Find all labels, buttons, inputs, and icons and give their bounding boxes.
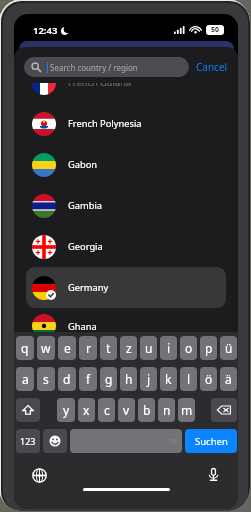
staticText: Cancel bbox=[196, 60, 228, 74]
staticText: n bbox=[163, 402, 171, 418]
button[interactable]: e bbox=[58, 336, 76, 360]
button[interactable]: Search country / region bbox=[24, 57, 189, 77]
staticText: p bbox=[205, 340, 213, 356]
staticText: ü bbox=[225, 340, 233, 356]
button[interactable]: r bbox=[79, 336, 97, 360]
button[interactable]: z bbox=[120, 336, 137, 360]
staticText: Search country / region bbox=[50, 62, 138, 73]
button[interactable]: 123 bbox=[16, 429, 40, 453]
button[interactable]: l bbox=[180, 367, 197, 391]
staticText: h bbox=[125, 371, 133, 387]
button[interactable]: i bbox=[160, 336, 177, 360]
staticText: 50 bbox=[211, 25, 220, 35]
button[interactable]: n bbox=[158, 398, 175, 422]
staticText: x bbox=[83, 402, 90, 418]
staticText: m bbox=[181, 402, 193, 418]
staticText: b bbox=[143, 402, 151, 418]
staticText: e bbox=[64, 340, 71, 356]
staticText: z bbox=[126, 340, 132, 356]
button[interactable]: ä bbox=[220, 367, 237, 391]
button[interactable]: p bbox=[200, 336, 217, 360]
button[interactable]: g bbox=[100, 367, 117, 391]
staticText: ä bbox=[225, 371, 232, 387]
staticText: c bbox=[104, 402, 110, 418]
button[interactable]: Emoji bbox=[43, 429, 67, 453]
staticText: ö bbox=[205, 371, 213, 387]
button[interactable]: Shift bbox=[16, 398, 40, 422]
staticText: q bbox=[21, 340, 29, 356]
button[interactable]: o bbox=[180, 336, 197, 360]
button[interactable]: Ghana bbox=[26, 308, 226, 344]
staticText: o bbox=[185, 340, 193, 356]
button[interactable]: Suchen bbox=[185, 429, 237, 453]
staticText: Gambia bbox=[68, 199, 103, 212]
button[interactable]: Change keyboard bbox=[30, 466, 49, 485]
button[interactable]: c bbox=[98, 398, 115, 422]
staticText: w bbox=[41, 340, 51, 356]
button[interactable]: v bbox=[118, 398, 135, 422]
staticText: DE bbox=[170, 437, 178, 445]
button[interactable]: Dictation bbox=[204, 465, 223, 484]
staticText: u bbox=[145, 340, 153, 356]
staticText: i bbox=[167, 340, 171, 356]
button[interactable]: DE bbox=[70, 429, 182, 453]
button[interactable]: k bbox=[160, 367, 177, 391]
staticText: y bbox=[63, 402, 70, 418]
button[interactable]: w bbox=[37, 336, 55, 360]
button[interactable]: Gambia bbox=[26, 185, 226, 226]
staticText: 123 bbox=[20, 435, 36, 447]
button[interactable]: f bbox=[79, 367, 97, 391]
button[interactable]: ö bbox=[200, 367, 217, 391]
staticText: j bbox=[147, 371, 151, 387]
staticText: Suchen bbox=[195, 435, 228, 448]
staticText: a bbox=[22, 371, 29, 387]
staticText: Georgia bbox=[68, 240, 103, 253]
staticText: Gabon bbox=[68, 158, 98, 171]
button[interactable]: y bbox=[57, 398, 75, 422]
button[interactable]: b bbox=[138, 398, 155, 422]
button[interactable]: s bbox=[37, 367, 55, 391]
staticText: f bbox=[86, 371, 91, 387]
staticText: Ghana bbox=[68, 320, 97, 333]
staticText: v bbox=[123, 402, 130, 418]
staticText: French Guiana bbox=[68, 83, 132, 89]
staticText: Germany bbox=[68, 281, 109, 294]
staticText: French Polynesia bbox=[68, 117, 142, 130]
button[interactable]: Gabon bbox=[26, 144, 226, 185]
staticText: d bbox=[63, 371, 71, 387]
button[interactable]: ü bbox=[220, 336, 237, 360]
button[interactable]: d bbox=[58, 367, 76, 391]
button[interactable]: t bbox=[100, 336, 117, 360]
staticText: g bbox=[105, 371, 113, 387]
staticText: r bbox=[86, 340, 91, 356]
button[interactable]: French Guiana bbox=[26, 83, 226, 103]
staticText: k bbox=[165, 371, 172, 387]
button[interactable]: Backspace bbox=[211, 398, 237, 422]
staticText: l bbox=[187, 371, 191, 387]
button[interactable]: Cancel bbox=[195, 60, 229, 74]
button[interactable]: h bbox=[120, 367, 137, 391]
button[interactable]: q bbox=[16, 336, 34, 360]
button[interactable]: a bbox=[16, 367, 34, 391]
button[interactable]: j bbox=[140, 367, 157, 391]
staticText: t bbox=[106, 340, 111, 356]
staticText: s bbox=[43, 371, 49, 387]
staticText: 12:43 bbox=[33, 24, 58, 37]
button[interactable]: Germany bbox=[26, 267, 226, 308]
button[interactable]: x bbox=[78, 398, 95, 422]
button[interactable]: u bbox=[140, 336, 157, 360]
button[interactable]: m bbox=[178, 398, 195, 422]
button[interactable]: French Polynesia bbox=[26, 103, 226, 144]
button[interactable]: Georgia bbox=[26, 226, 226, 267]
